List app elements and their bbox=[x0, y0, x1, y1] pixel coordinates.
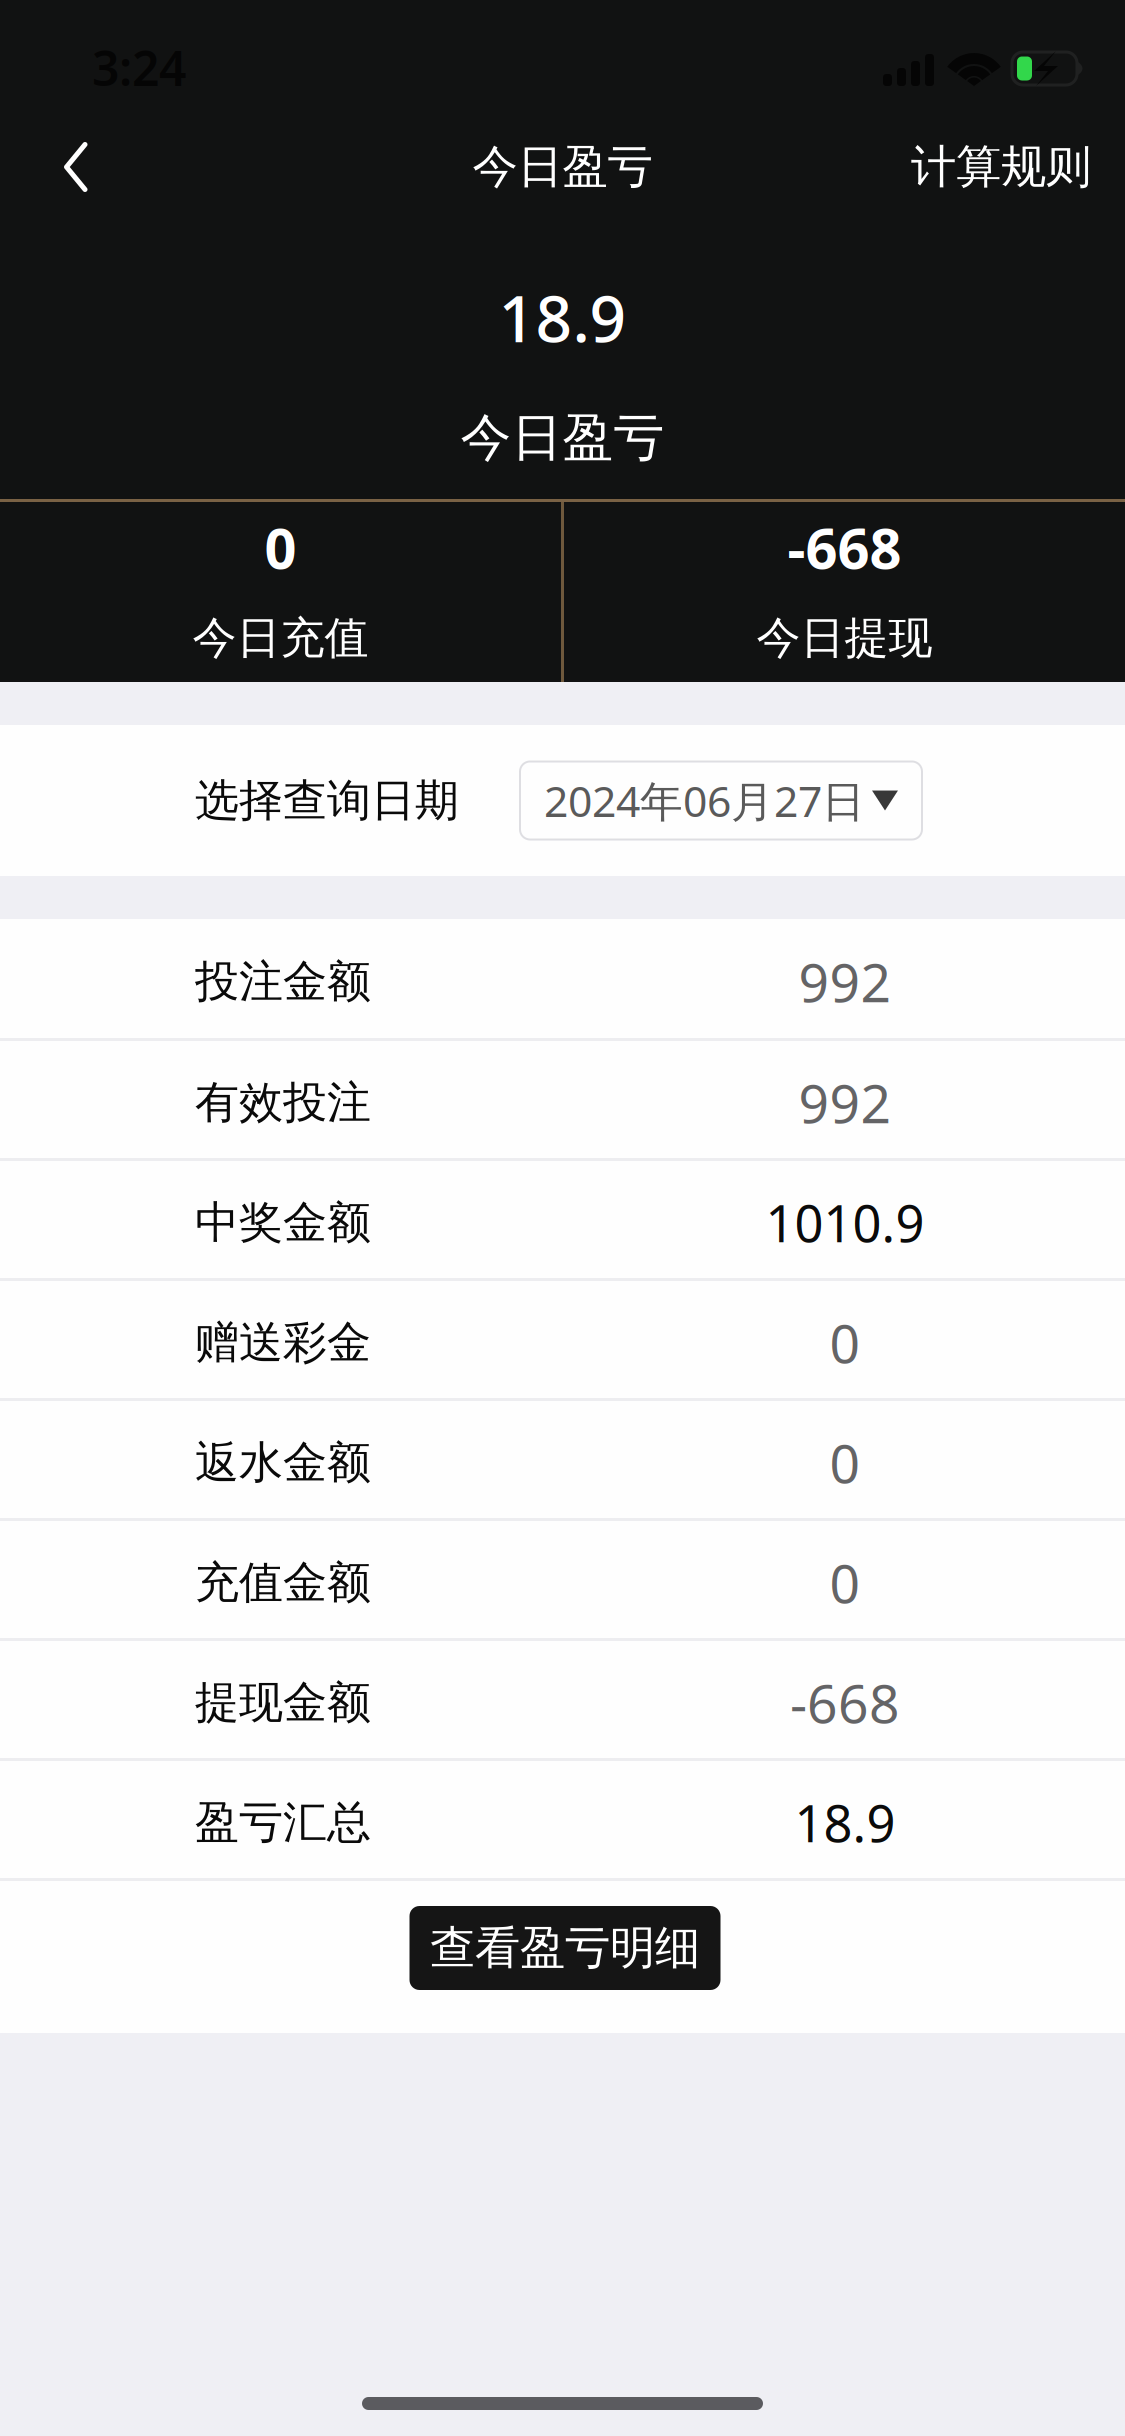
staticText: 查看盈亏明细 bbox=[430, 1920, 700, 1976]
staticText: 2024年06月27日 bbox=[544, 772, 865, 829]
staticText: 中奖金额 bbox=[195, 1195, 371, 1249]
staticText: -668 bbox=[787, 510, 901, 584]
staticText: 充值金额 bbox=[195, 1555, 371, 1609]
staticText: 992 bbox=[798, 1067, 891, 1138]
staticText: 盈亏汇总 bbox=[195, 1795, 371, 1849]
staticText: 今日盈亏 bbox=[472, 139, 652, 195]
staticText: 992 bbox=[798, 946, 891, 1017]
staticText: -668 bbox=[790, 1667, 900, 1738]
staticText: 今日充值 bbox=[192, 611, 368, 665]
staticText: 计算规则 bbox=[911, 139, 1091, 195]
staticText: 0 bbox=[829, 1307, 860, 1378]
button[interactable]: 计算规则 bbox=[892, 119, 1110, 215]
staticText: 投注金额 bbox=[195, 954, 371, 1008]
staticText: 有效投注 bbox=[195, 1075, 371, 1129]
staticText: 18.9 bbox=[498, 275, 626, 360]
staticText: 今日提现 bbox=[756, 611, 932, 665]
staticText: 赠送彩金 bbox=[195, 1315, 371, 1369]
staticText: 提现金额 bbox=[195, 1675, 371, 1729]
staticText: 0 bbox=[829, 1547, 860, 1618]
staticText: 返水金额 bbox=[195, 1435, 371, 1489]
staticText: 选择查询日期 bbox=[195, 773, 459, 827]
staticText: 0 bbox=[264, 510, 296, 584]
staticText: 3:24 bbox=[92, 36, 186, 99]
button[interactable]: 2024年06月27日 bbox=[520, 761, 922, 839]
button[interactable]: Back bbox=[34, 122, 117, 212]
staticText: 今日盈亏 bbox=[460, 407, 664, 469]
staticText: 0 bbox=[829, 1427, 860, 1498]
staticText: 18.9 bbox=[794, 1789, 895, 1856]
button[interactable]: 查看盈亏明细 bbox=[409, 1906, 720, 1990]
staticText: 1010.9 bbox=[765, 1189, 924, 1256]
